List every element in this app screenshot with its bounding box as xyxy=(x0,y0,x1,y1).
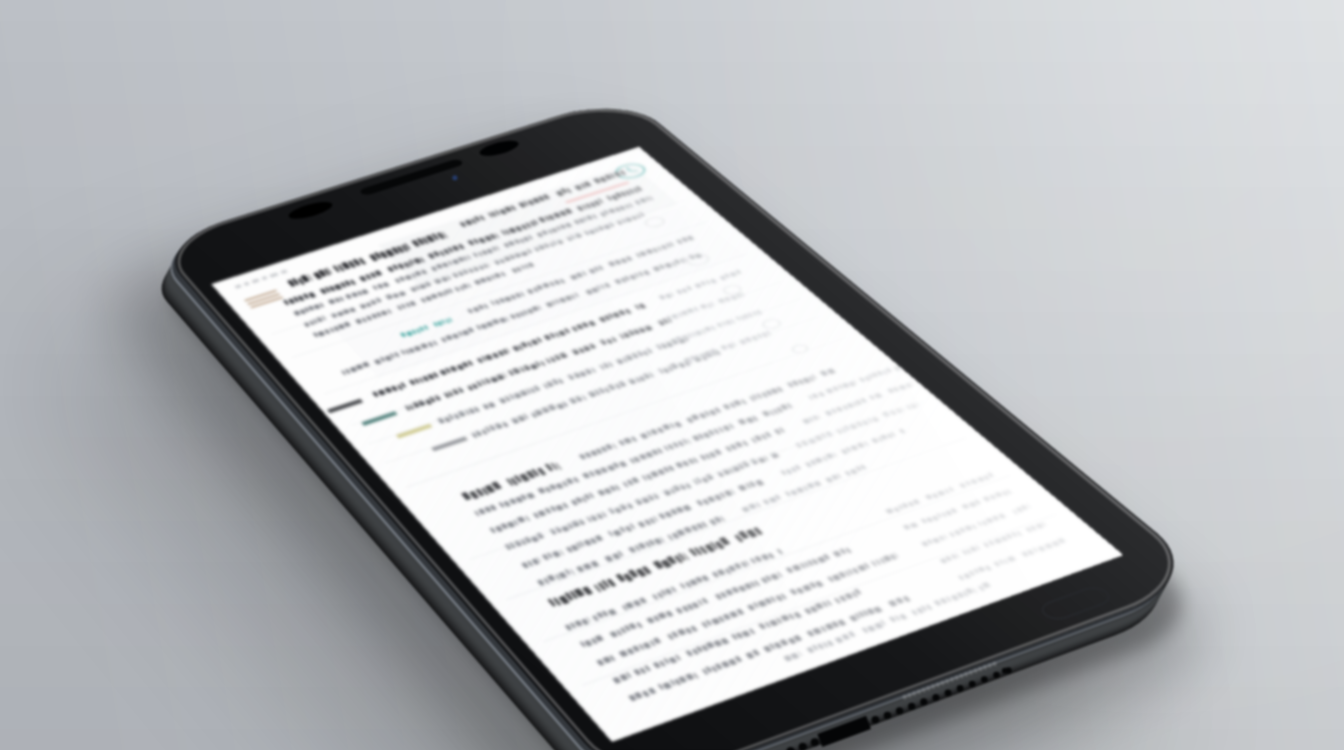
button[interactable]: Android phone xyxy=(121,85,1265,750)
button[interactable]: List item 4 xyxy=(366,306,846,480)
button[interactable]: List item 3 xyxy=(350,289,827,461)
button[interactable]: Section heading xyxy=(405,345,906,535)
button[interactable]: History xyxy=(591,152,671,192)
button[interactable]: List item 2 xyxy=(333,272,806,441)
button[interactable]: Read more link xyxy=(381,306,477,345)
button[interactable]: Open navigation menu xyxy=(222,275,308,317)
button[interactable]: Home xyxy=(985,558,1166,644)
button[interactable]: List item 1 xyxy=(317,256,786,423)
button[interactable]: Article title xyxy=(221,158,668,312)
